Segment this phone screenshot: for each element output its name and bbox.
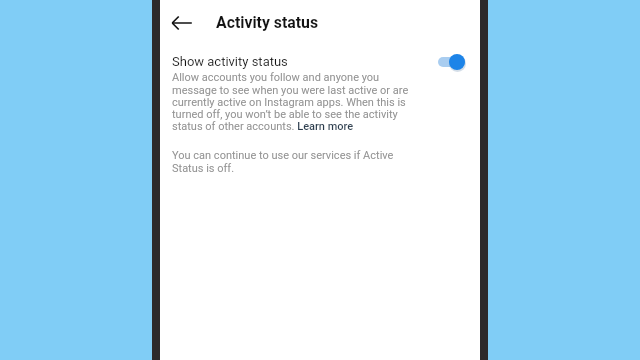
staticText: You can continue to use our services if … [172,149,414,174]
staticText: Activity status [216,13,319,32]
button[interactable]: Show activity status [160,48,480,74]
staticText: Show activity status [172,54,288,69]
staticText: Allow accounts you follow and anyone you… [172,71,414,132]
button[interactable]: Show activity status, on [436,52,470,72]
button[interactable]: Back [167,8,197,38]
